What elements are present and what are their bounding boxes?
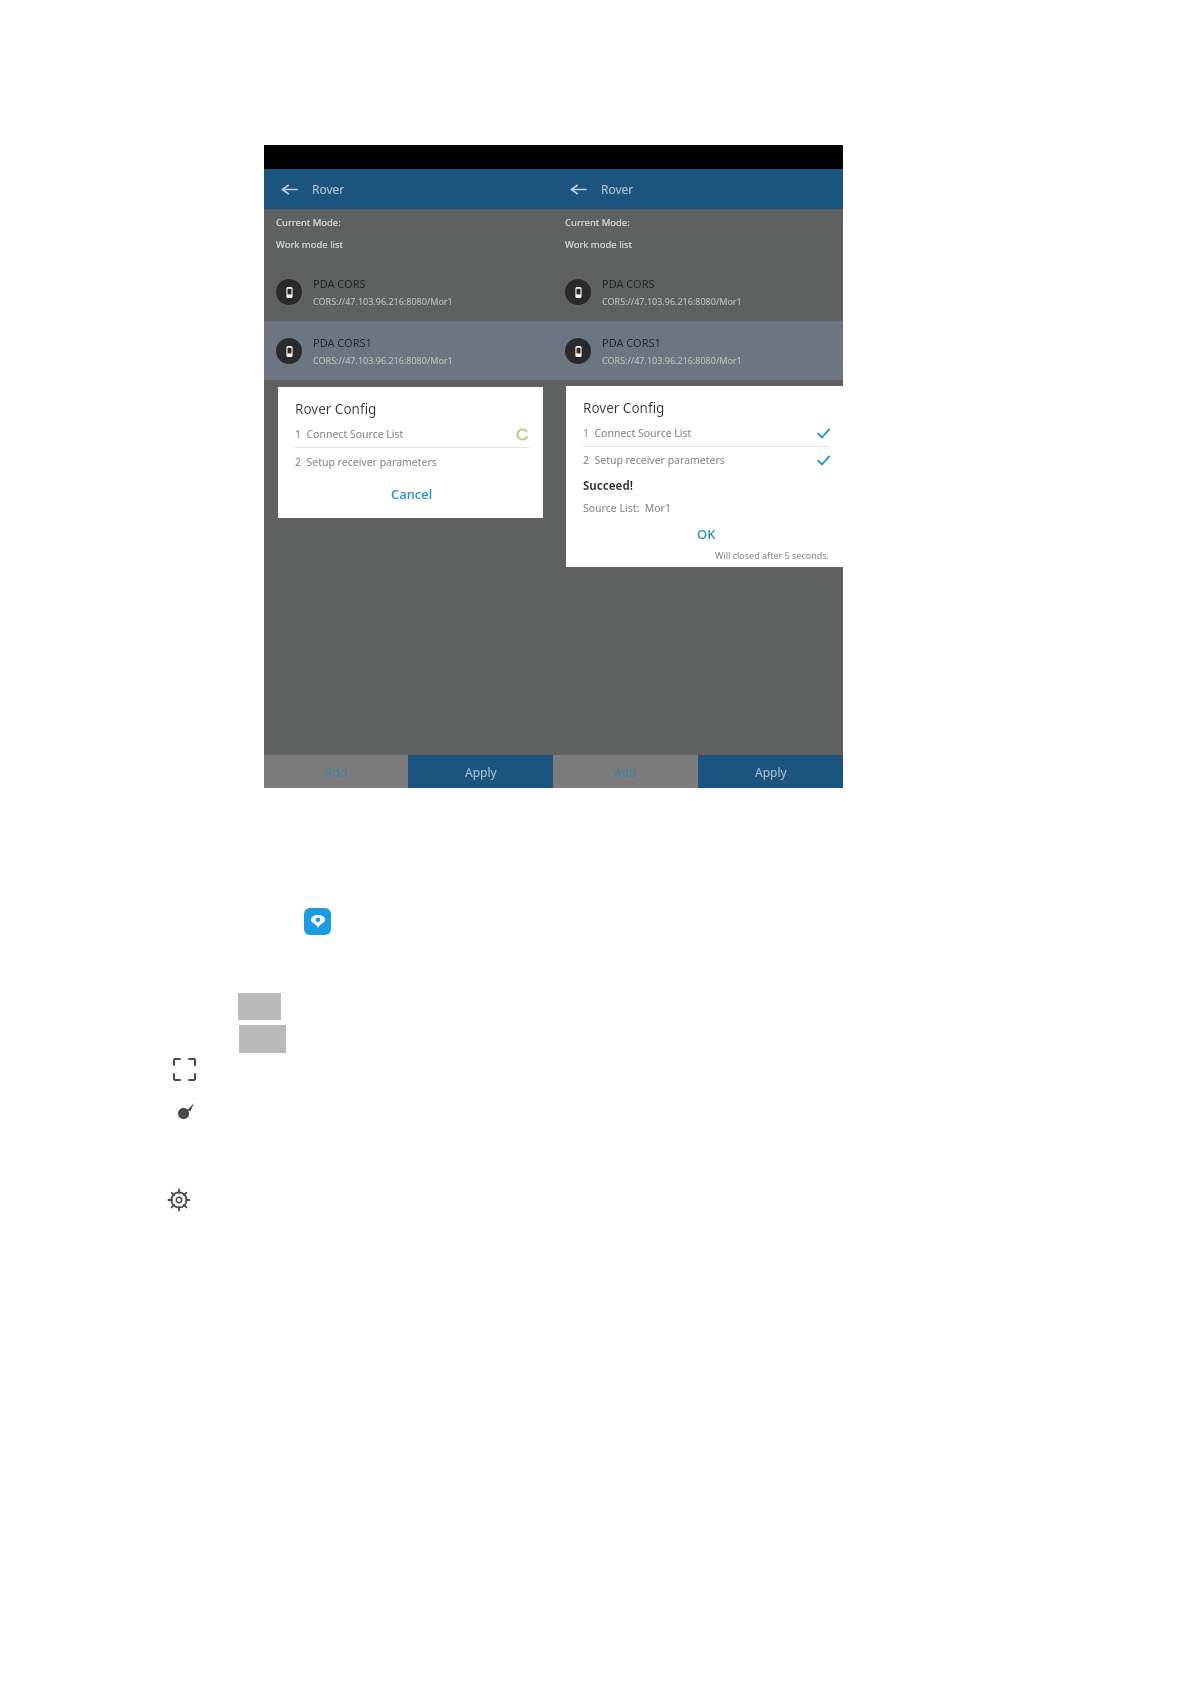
- button[interactable]: PDA CORS: [553, 262, 843, 321]
- staticText: Apply: [465, 764, 497, 780]
- button[interactable]: PDA CORS1: [264, 321, 553, 380]
- button[interactable]: Apply: [408, 755, 553, 788]
- staticText: Will closed after 5 seconds.: [715, 549, 830, 561]
- button[interactable]: Settings: [164, 1185, 193, 1214]
- staticText: 1 Connect Source List: [583, 426, 692, 440]
- staticText: Work mode list: [565, 238, 633, 251]
- staticText: CORS://47.103.96.216:8080/Mor1: [313, 354, 453, 366]
- staticText: CORS://47.103.96.216:8080/Mor1: [313, 295, 453, 307]
- staticText: Cancel: [391, 485, 433, 503]
- staticText: PDA CORS1: [313, 335, 372, 350]
- button[interactable]: Location: [304, 908, 331, 935]
- button[interactable]: Cancel: [295, 482, 529, 506]
- button[interactable]: Apply: [698, 755, 843, 788]
- button[interactable]: PDA CORS: [264, 262, 553, 321]
- staticText: Source List: Mor1: [583, 501, 671, 515]
- button[interactable]: Marker: [170, 1097, 199, 1126]
- button[interactable]: Add: [264, 755, 408, 788]
- staticText: PDA CORS1: [602, 335, 661, 350]
- staticText: PDA CORS: [602, 276, 655, 291]
- staticText: Rover: [312, 181, 345, 197]
- staticText: Succeed!: [583, 478, 633, 494]
- button[interactable]: OK: [583, 523, 830, 545]
- staticText: OK: [697, 525, 716, 543]
- staticText: PDA CORS: [313, 276, 366, 291]
- button[interactable]: PDA CORS1: [553, 321, 843, 380]
- button[interactable]: Add: [553, 755, 698, 788]
- staticText: Rover: [601, 181, 634, 197]
- staticText: Rover Config: [583, 399, 665, 417]
- staticText: Rover Config: [295, 400, 377, 418]
- staticText: 1 Connect Source List: [295, 427, 404, 441]
- staticText: 2 Setup receiver parameters: [295, 455, 437, 469]
- button[interactable]: Back: [567, 178, 589, 200]
- button[interactable]: Fullscreen: [170, 1055, 199, 1084]
- staticText: Current Mode:: [565, 216, 630, 229]
- staticText: Add: [614, 764, 637, 780]
- button[interactable]: Back: [278, 178, 300, 200]
- staticText: Add: [325, 764, 348, 780]
- staticText: Work mode list: [276, 238, 344, 251]
- staticText: CORS://47.103.96.216:8080/Mor1: [602, 354, 742, 366]
- staticText: Current Mode:: [276, 216, 341, 229]
- staticText: CORS://47.103.96.216:8080/Mor1: [602, 295, 742, 307]
- staticText: 2 Setup receiver parameters: [583, 453, 725, 467]
- staticText: Apply: [755, 764, 787, 780]
